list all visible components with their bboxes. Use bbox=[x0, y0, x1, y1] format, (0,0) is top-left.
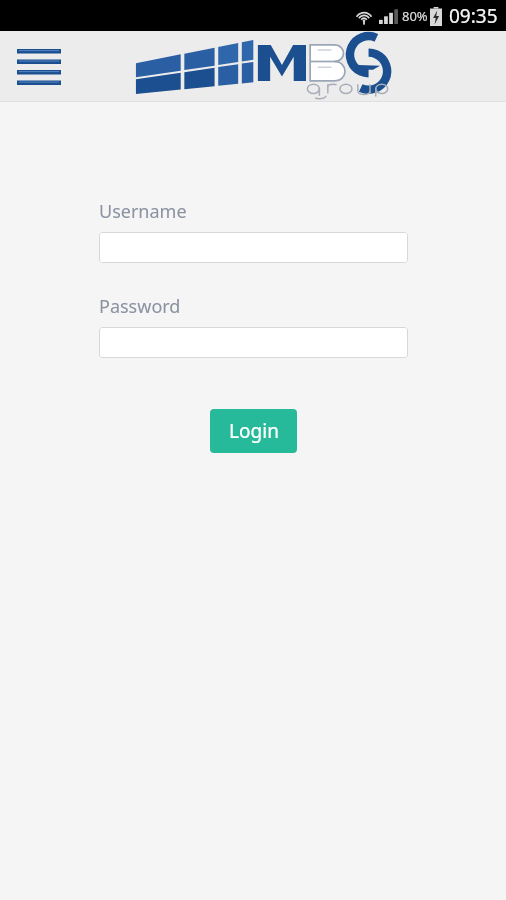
staticText: Login bbox=[229, 418, 279, 444]
staticText: Password bbox=[99, 294, 181, 319]
staticText: 80% bbox=[402, 7, 428, 25]
staticText: Username bbox=[99, 199, 187, 224]
button[interactable]: Login bbox=[210, 409, 297, 453]
button[interactable]: Password input bbox=[99, 327, 408, 358]
staticText: 09:35 bbox=[449, 3, 498, 29]
button[interactable]: Open navigation menu bbox=[10, 41, 68, 93]
button[interactable]: Username input bbox=[99, 232, 408, 263]
